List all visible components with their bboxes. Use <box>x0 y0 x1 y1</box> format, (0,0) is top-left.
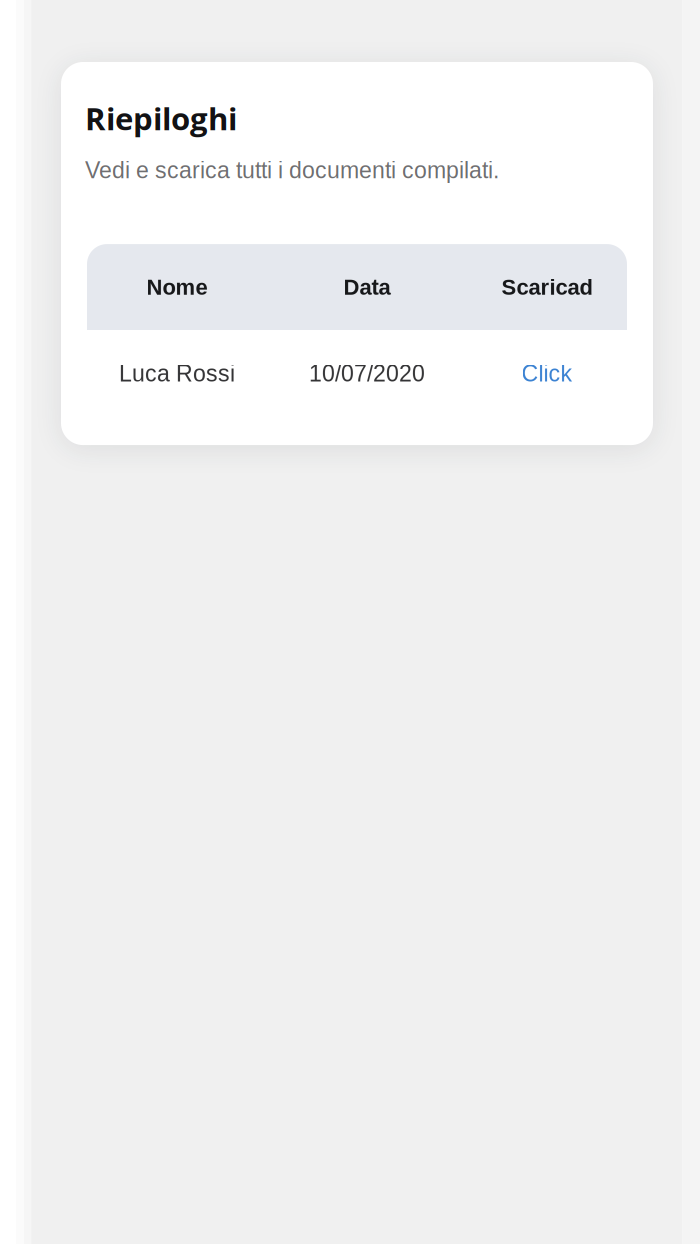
staticText: Data <box>343 275 390 299</box>
staticText: Scaricad <box>501 275 592 299</box>
button[interactable]: Click <box>467 361 627 386</box>
staticText: Riepiloghi <box>85 97 237 139</box>
staticText: 10/07/2020 <box>309 361 425 386</box>
staticText: Nome <box>146 275 207 299</box>
staticText: Luca Rossi <box>119 361 235 386</box>
staticText: Vedi e scarica tutti i documenti compila… <box>85 157 499 183</box>
staticText: Click <box>521 361 572 386</box>
